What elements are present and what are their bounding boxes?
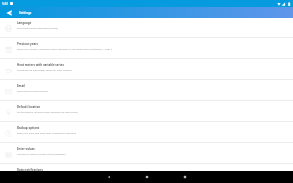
button[interactable]: Default location: [0, 101, 293, 122]
staticText: Email: [17, 84, 25, 88]
staticText: 9:30: [2, 2, 8, 6]
staticText: Select application language (English): [17, 26, 59, 29]
staticText: Data notifications: [17, 168, 43, 171]
button[interactable]: Heat meters with variable series: [0, 59, 293, 80]
staticText: Heat meters with variable series: [17, 63, 64, 67]
staticText: Settings: [19, 11, 32, 15]
staticText: Default location: [17, 105, 41, 109]
button[interactable]: Home: [138, 171, 156, 183]
button[interactable]: Previous years: [0, 38, 293, 59]
staticText: Set the default location when opening th…: [17, 110, 78, 113]
staticText: Previous years: [17, 42, 38, 46]
staticText: Backup options: [17, 126, 40, 130]
button[interactable]: Email: [0, 80, 293, 101]
staticText: Choose an option to enter values (Readme…: [17, 152, 66, 155]
staticText: Select the number of previous years disp…: [17, 47, 113, 50]
button[interactable]: Data notifications: [0, 164, 293, 171]
button[interactable]: Back: [100, 171, 118, 183]
button[interactable]: Navigate up: [0, 7, 17, 18]
staticText: Changing the heat meter series for each …: [17, 68, 72, 71]
button[interactable]: Backup options: [0, 122, 293, 143]
button[interactable]: Enter values: [0, 143, 293, 164]
button[interactable]: Language: [0, 18, 293, 38]
button[interactable]: Recent apps: [176, 171, 194, 183]
staticText: Language: [17, 21, 32, 25]
staticText: Enter values: [17, 147, 35, 151]
staticText: Select email to send photos: [17, 89, 48, 92]
staticText: Keep your data safe even after changing …: [17, 131, 77, 134]
